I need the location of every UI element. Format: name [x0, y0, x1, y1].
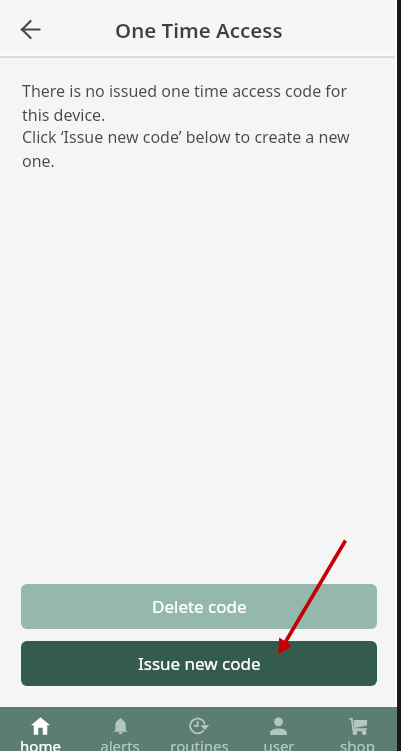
button[interactable]: shop [318, 707, 397, 751]
button[interactable]: alerts [80, 707, 160, 751]
button[interactable]: Delete code [21, 584, 377, 629]
staticText: shop [340, 736, 375, 751]
button[interactable]: user [239, 707, 318, 751]
staticText: user [263, 736, 295, 751]
button[interactable]: home [0, 707, 80, 751]
staticText: alerts [100, 736, 140, 751]
staticText: One Time Access [115, 16, 283, 44]
staticText: Delete code [152, 595, 247, 618]
staticText: routines [170, 736, 229, 751]
staticText: There is no issued one time access code … [22, 80, 357, 126]
staticText: home [20, 736, 61, 751]
button[interactable]: Issue new code [21, 641, 377, 686]
staticText: Click ‘Issue new code’ below to create a… [22, 126, 357, 172]
staticText: Issue new code [138, 652, 261, 675]
button[interactable]: Back [7, 6, 54, 53]
button[interactable]: routines [160, 707, 239, 751]
